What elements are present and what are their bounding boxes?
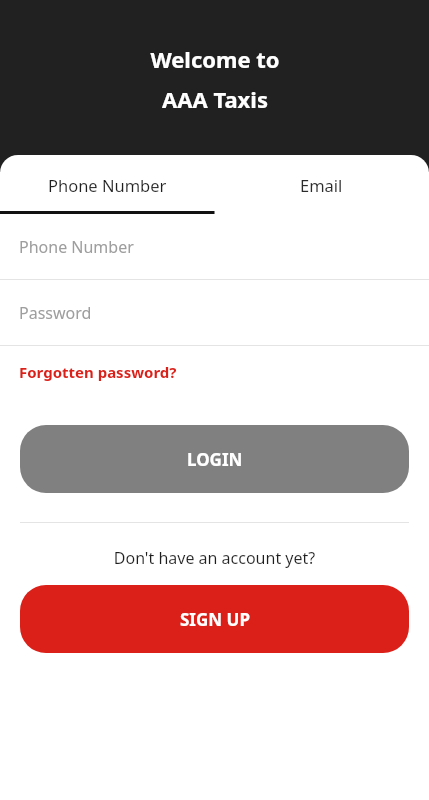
staticText: SIGN UP: [180, 608, 250, 631]
button[interactable]: Phone Number: [0, 155, 214, 214]
staticText: Don't have an account yet?: [0, 547, 429, 569]
staticText: LOGIN: [187, 448, 243, 471]
button[interactable]: Email: [214, 155, 429, 214]
staticText: Password: [19, 302, 92, 324]
staticText: Email: [300, 174, 343, 196]
staticText: AAA Taxis: [162, 84, 268, 114]
button[interactable]: Forgotten password?: [19, 362, 177, 382]
staticText: Welcome to: [150, 44, 280, 74]
staticText: Phone Number: [48, 174, 167, 196]
staticText: Phone Number: [19, 236, 134, 258]
button[interactable]: Password: [0, 280, 429, 346]
staticText: Forgotten password?: [19, 362, 177, 382]
button[interactable]: SIGN UP: [20, 585, 409, 653]
button[interactable]: Phone Number: [0, 214, 429, 280]
button[interactable]: LOGIN: [20, 425, 409, 493]
